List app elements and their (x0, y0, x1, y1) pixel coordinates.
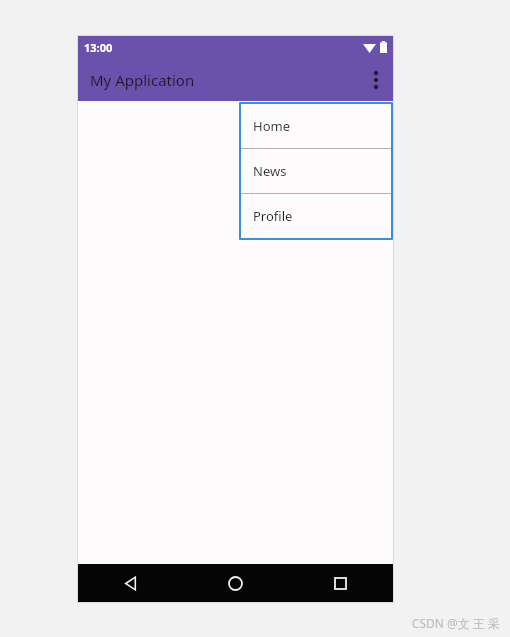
button[interactable]: Profile (241, 194, 391, 238)
staticText: Home (253, 117, 290, 135)
staticText: My Application (90, 70, 195, 90)
staticText: Profile (253, 207, 293, 225)
button[interactable]: Back (78, 564, 183, 602)
staticText: 13:00 (84, 40, 113, 55)
staticText: News (253, 162, 287, 180)
staticText: CSDN @文 王 采 (411, 615, 500, 631)
button[interactable]: Home (183, 564, 288, 602)
button[interactable]: Recent apps (288, 564, 393, 602)
button[interactable]: News (241, 149, 391, 193)
button[interactable]: More options (359, 58, 393, 101)
button[interactable]: Home (241, 104, 391, 148)
